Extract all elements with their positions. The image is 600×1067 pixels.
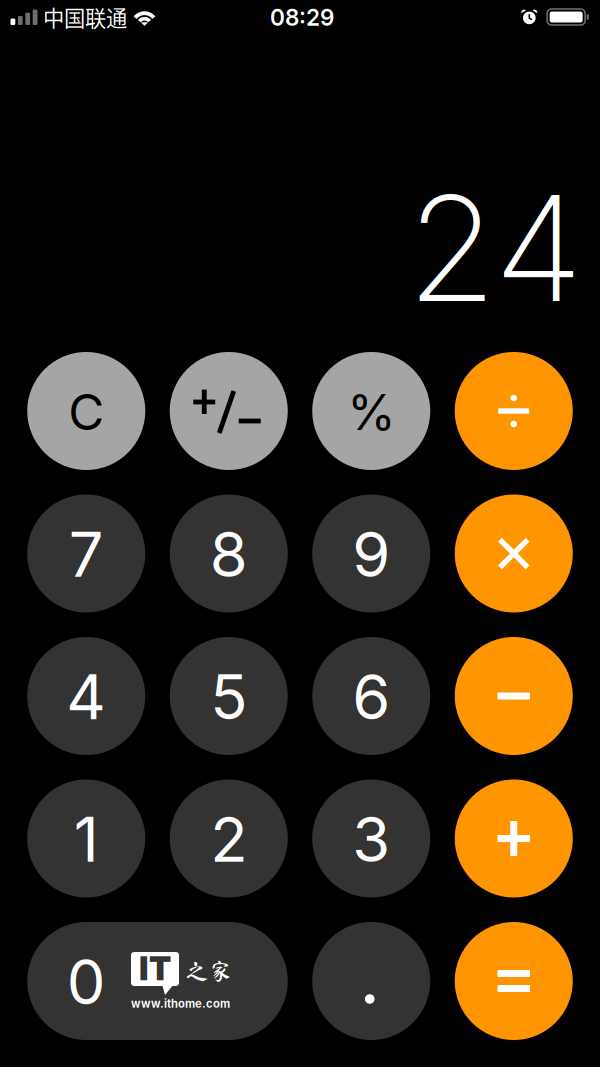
button[interactable]: 8 [170,494,288,612]
button[interactable]: Plus minus [170,352,288,470]
staticText: 8 [210,517,248,592]
staticText: C [68,382,104,442]
button[interactable]: % [312,352,430,470]
button[interactable]: C [27,352,145,470]
staticText: 0 [67,945,106,1019]
staticText: IT [139,948,171,988]
button[interactable]: Equals [455,922,573,1040]
staticText: www.ithome.com [131,997,230,1011]
button[interactable]: 5 [170,637,288,755]
staticText: 7 [69,517,104,592]
button[interactable]: 7 [27,494,145,612]
staticText: 4 [66,660,106,734]
button[interactable]: 3 [312,779,430,897]
button[interactable]: 1 [27,779,145,897]
button[interactable]: 6 [312,637,430,755]
button[interactable]: 4 [27,637,145,755]
button[interactable]: 2 [170,779,288,897]
button[interactable]: Add [455,779,573,897]
staticText: 2 [210,802,247,877]
button[interactable]: Subtract [455,637,573,755]
button[interactable]: 0 [27,922,288,1040]
staticText: 3 [352,802,390,877]
staticText: 24 [407,160,583,336]
staticText: 08:29 [270,4,334,31]
staticText: 1 [74,802,99,877]
staticText: 之家 [185,959,233,983]
staticText: 6 [352,660,390,734]
button[interactable]: Decimal point [312,922,430,1040]
staticText: % [347,382,395,442]
button[interactable]: Multiply [455,494,573,612]
staticText: 5 [210,660,247,734]
staticText: 9 [352,517,390,592]
button[interactable]: 9 [312,494,430,612]
staticText: 中国联通 [43,2,127,32]
button[interactable]: Divide [455,352,573,470]
